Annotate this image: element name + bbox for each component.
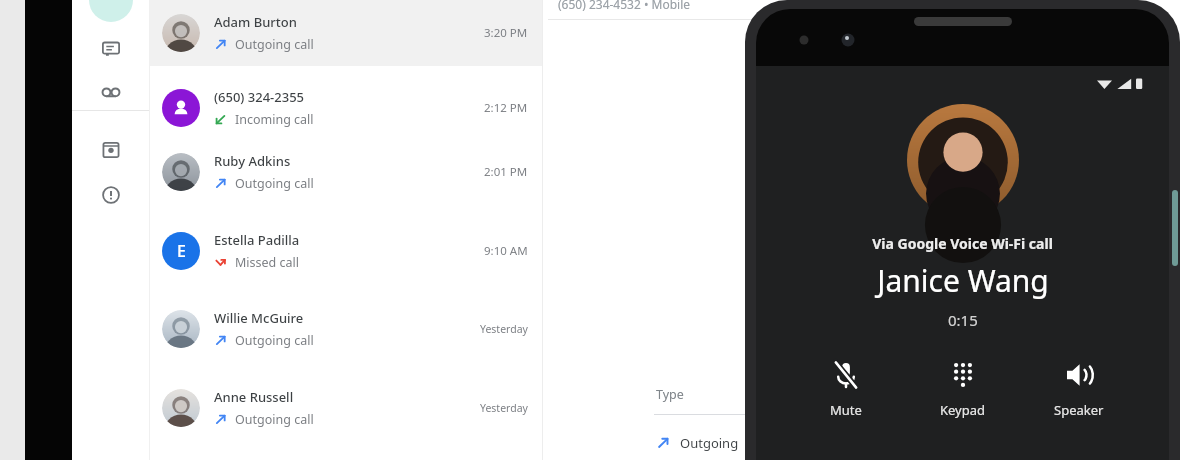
staticText: (650) 234-4532 • Mobile	[558, 0, 691, 12]
staticText: 0:15	[948, 310, 978, 330]
button[interactable]: Ruby Adkins	[150, 139, 542, 205]
staticText: Yesterday	[480, 401, 528, 415]
staticText: Outgoing call	[235, 36, 314, 53]
staticText: Missed call	[235, 254, 299, 271]
staticText: (650) 324-2355	[214, 88, 305, 106]
staticText: Ruby Adkins	[214, 152, 291, 170]
button[interactable]: Willie McGuire	[150, 296, 542, 362]
staticText: Mute	[830, 401, 862, 419]
button[interactable]: Voicemail	[89, 70, 133, 114]
staticText: Anne Russell	[214, 388, 294, 406]
button[interactable]: Anne Russell	[150, 375, 542, 441]
staticText: Estella Padilla	[214, 231, 300, 249]
button[interactable]: Speaker	[1030, 356, 1128, 423]
staticText: Outgoing call	[235, 332, 314, 349]
staticText: E	[177, 240, 186, 262]
staticText: Via Google Voice Wi-Fi call	[872, 234, 1053, 253]
staticText: Keypad	[940, 401, 986, 419]
button[interactable]: Info	[89, 173, 133, 217]
staticText: Outgoing	[680, 434, 739, 452]
staticText: Janice Wang	[877, 260, 1049, 301]
staticText: Willie McGuire	[214, 309, 304, 327]
staticText: 2:01 PM	[484, 164, 528, 180]
button[interactable]: (650) 324-2355	[150, 75, 542, 141]
button[interactable]: Outgoing	[656, 430, 739, 456]
staticText: Speaker	[1054, 401, 1104, 419]
staticText: Outgoing call	[235, 175, 314, 192]
staticText: Type	[656, 386, 684, 403]
staticText: Incoming call	[235, 111, 314, 128]
staticText: 3:20 PM	[484, 25, 528, 41]
staticText: Adam Burton	[214, 13, 297, 31]
button[interactable]: Keypad	[914, 356, 1012, 423]
button[interactable]: E	[150, 218, 542, 284]
staticText: 9:10 AM	[484, 243, 528, 259]
button[interactable]: Adam Burton	[150, 0, 542, 66]
staticText: Yesterday	[480, 322, 528, 336]
button[interactable]: Calls	[89, 0, 133, 22]
staticText: Outgoing call	[235, 411, 314, 428]
button[interactable]: Archive	[89, 128, 133, 172]
staticText: 2:12 PM	[484, 100, 528, 116]
button[interactable]: Mute	[797, 356, 895, 423]
button[interactable]: Messages	[89, 27, 133, 71]
